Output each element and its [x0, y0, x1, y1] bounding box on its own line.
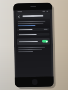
button[interactable]: Back — [15, 13, 50, 19]
button[interactable] — [17, 21, 49, 26]
button[interactable]: Toggle setting — [17, 38, 50, 45]
button[interactable]: Toggle setting — [42, 40, 48, 43]
other: Back — [17, 15, 20, 18]
button[interactable] — [17, 28, 50, 31]
button[interactable]: Home — [32, 79, 38, 85]
button[interactable] — [17, 33, 50, 36]
